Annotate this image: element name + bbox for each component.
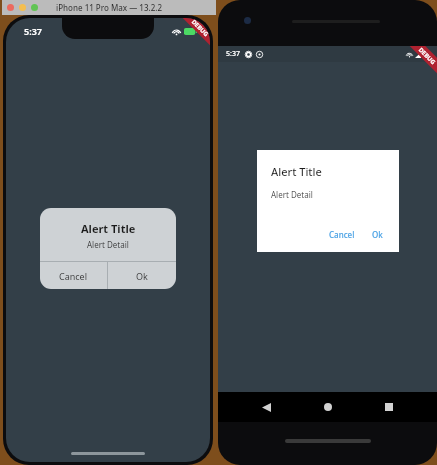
staticText: 5:37 <box>226 49 240 59</box>
staticText: Cancel <box>329 229 355 240</box>
staticText: Ok <box>136 270 148 282</box>
button[interactable]: Cancel <box>40 262 107 289</box>
button[interactable]: Cancel <box>321 224 363 245</box>
staticText: Cancel <box>59 270 88 282</box>
staticText: Alert Title <box>271 164 322 179</box>
button[interactable]: Home <box>315 394 341 420</box>
staticText: Ok <box>372 229 383 240</box>
button[interactable]: Back <box>253 394 279 420</box>
button[interactable]: Ok <box>108 262 176 289</box>
staticText: Alert Title <box>81 221 136 236</box>
button[interactable]: Recent apps <box>376 394 402 420</box>
staticText: iPhone 11 Pro Max — 13.2.2 <box>56 2 163 13</box>
staticText: DEBUG <box>190 18 210 38</box>
staticText: 5:37 <box>24 25 42 37</box>
staticText: Alert Detail <box>87 239 129 250</box>
staticText: DEBUG <box>417 46 437 66</box>
staticText: Alert Detail <box>271 189 313 200</box>
button[interactable]: Ok <box>363 224 392 245</box>
